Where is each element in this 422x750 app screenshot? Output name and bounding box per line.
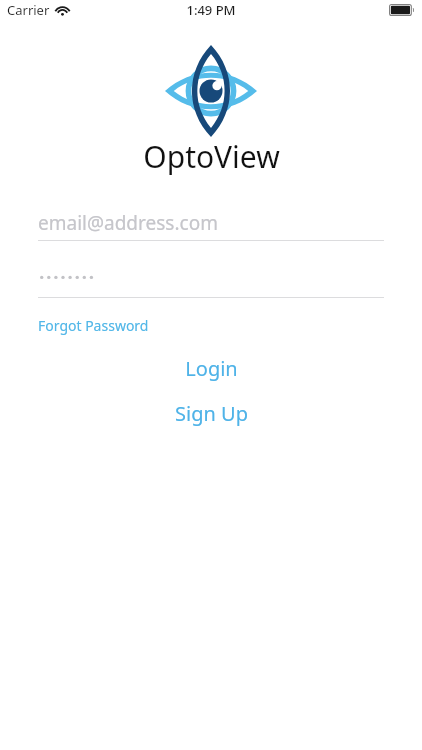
button[interactable]: Login <box>0 353 422 383</box>
button[interactable]: Sign Up <box>0 398 422 428</box>
staticText: Login <box>185 355 238 382</box>
staticText: Carrier <box>7 1 50 19</box>
button[interactable]: Forgot Password <box>38 313 149 337</box>
staticText: email@address.com <box>38 210 218 236</box>
other: OptoView logo <box>165 45 257 137</box>
button[interactable]: email@address.com <box>38 204 384 241</box>
staticText: 1:49 PM <box>186 1 236 19</box>
button[interactable] <box>38 262 384 297</box>
staticText: Sign Up <box>175 400 248 427</box>
staticText: Forgot Password <box>38 316 149 335</box>
staticText: OptoView <box>143 136 280 177</box>
